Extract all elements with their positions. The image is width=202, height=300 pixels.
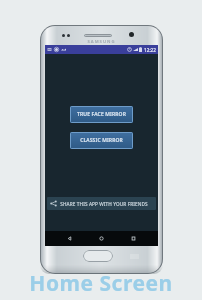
button[interactable]: Share — [47, 197, 156, 210]
staticText: SAMSUNG — [87, 39, 116, 45]
staticText: Home Screen — [29, 269, 173, 298]
button[interactable]: TRUE FACE MIRROR — [70, 106, 133, 123]
button[interactable]: Home — [94, 231, 109, 246]
button[interactable]: Recent apps — [126, 231, 141, 246]
staticText: SHARE THIS APP WITH YOUR FRIENDS — [60, 201, 148, 207]
button[interactable]: CLASSIC MIRROR — [70, 132, 133, 149]
staticText: TRUE FACE MIRROR — [77, 111, 126, 118]
button[interactable]: Back — [62, 231, 77, 246]
staticText: 12:22 — [144, 47, 156, 53]
other: Share — [50, 200, 57, 207]
staticText: CLASSIC MIRROR — [80, 137, 123, 144]
